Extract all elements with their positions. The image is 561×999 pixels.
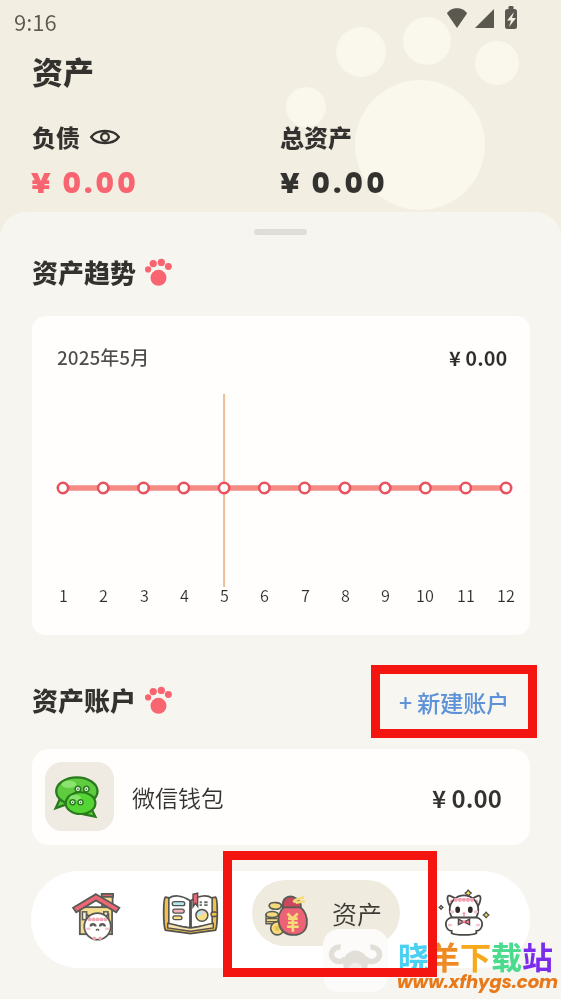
staticText: 2 bbox=[99, 583, 108, 606]
staticText: + 新建账户 bbox=[399, 685, 510, 718]
staticText: 载 bbox=[491, 933, 522, 978]
staticText: 下 bbox=[460, 933, 491, 978]
staticText: ¥ 0.00 bbox=[432, 780, 502, 815]
staticText: 9:16 bbox=[14, 5, 57, 37]
staticText: 3 bbox=[140, 583, 149, 606]
staticText: 7 bbox=[301, 583, 310, 606]
button[interactable]: 微信钱包 bbox=[32, 749, 530, 845]
staticText: 资产趋势 bbox=[32, 253, 137, 291]
staticText: ¥ 0.00 bbox=[280, 164, 388, 203]
staticText: 12 bbox=[497, 583, 515, 606]
staticText: www.xfhygs.com bbox=[397, 969, 559, 994]
button[interactable]: 资产 bbox=[252, 880, 400, 946]
button[interactable]: 显示或隐藏金额 bbox=[89, 126, 120, 148]
staticText: 资产账户 bbox=[32, 681, 137, 719]
staticText: 资产 bbox=[32, 48, 94, 93]
staticText: 晓 bbox=[398, 933, 429, 978]
staticText: 8 bbox=[341, 583, 350, 606]
button[interactable]: 账本 bbox=[159, 885, 221, 947]
staticText: 4 bbox=[180, 583, 189, 606]
staticText: 5 bbox=[220, 583, 229, 606]
button[interactable]: + 新建账户 bbox=[380, 674, 528, 729]
staticText: 羊 bbox=[429, 933, 460, 978]
staticText: ¥ 0.00 bbox=[31, 164, 139, 203]
staticText: 站 bbox=[522, 933, 553, 978]
button[interactable]: 首页 bbox=[66, 885, 128, 947]
staticText: 资产 bbox=[332, 895, 383, 931]
staticText: 负债 bbox=[32, 119, 80, 154]
staticText: 9 bbox=[381, 583, 390, 606]
staticText: 总资产 bbox=[280, 119, 352, 154]
button[interactable]: 我的 bbox=[431, 880, 497, 946]
staticText: 1 bbox=[59, 583, 68, 606]
staticText: ¥ 0.00 bbox=[449, 343, 508, 372]
staticText: 11 bbox=[457, 583, 475, 606]
staticText: 6 bbox=[260, 583, 269, 606]
staticText: 10 bbox=[416, 583, 434, 606]
staticText: 2025年5月 bbox=[57, 343, 150, 371]
staticText: 微信钱包 bbox=[132, 780, 224, 813]
